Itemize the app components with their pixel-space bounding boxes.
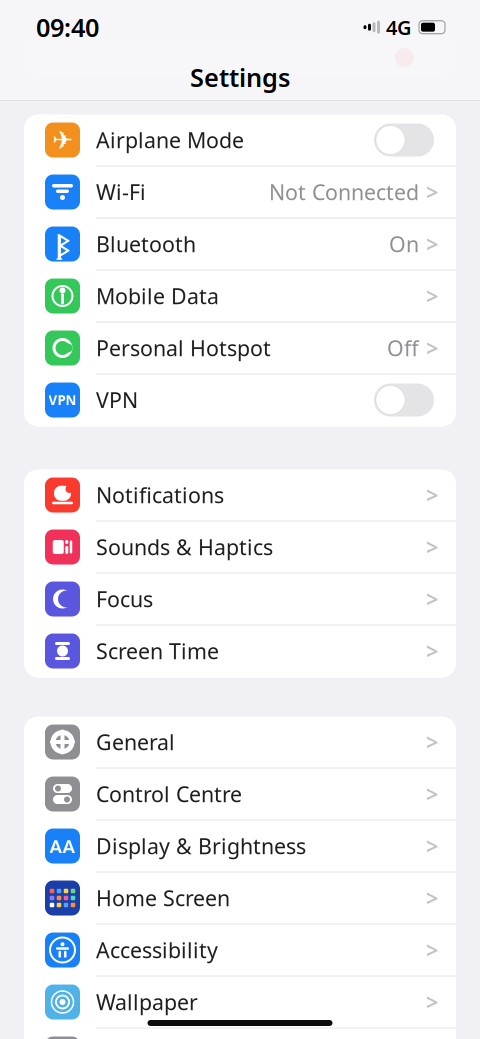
staticText: > bbox=[425, 935, 438, 965]
button[interactable]: ◎ bbox=[24, 1028, 456, 1039]
staticText: > bbox=[425, 333, 438, 363]
staticText: Control Centre bbox=[96, 780, 242, 808]
staticText: Accessibility bbox=[96, 936, 218, 964]
staticText: > bbox=[425, 281, 438, 311]
staticText: Screen Time bbox=[96, 637, 219, 665]
staticText: > bbox=[425, 532, 438, 562]
button[interactable]: Personal Hotspot bbox=[24, 322, 456, 374]
staticText: > bbox=[425, 779, 438, 809]
staticText: VPN bbox=[96, 386, 138, 414]
staticText: AA bbox=[49, 834, 75, 858]
button[interactable]: Sounds & Haptics bbox=[24, 521, 456, 573]
staticText: > bbox=[425, 229, 438, 259]
button[interactable]: Accessibility bbox=[24, 924, 456, 976]
staticText: On bbox=[389, 230, 419, 258]
staticText: Off bbox=[387, 334, 419, 362]
button[interactable]: Focus bbox=[24, 573, 456, 625]
staticText: 4G bbox=[386, 14, 412, 40]
staticText: ✈ bbox=[52, 126, 73, 154]
button[interactable]: VPN bbox=[24, 374, 456, 426]
staticText: Home Screen bbox=[96, 884, 230, 912]
staticText: > bbox=[425, 177, 438, 207]
staticText: Settings bbox=[190, 60, 290, 94]
staticText: Bluetooth bbox=[96, 230, 196, 258]
button[interactable]: ✈ bbox=[24, 114, 456, 166]
staticText: > bbox=[425, 636, 438, 666]
staticText: > bbox=[425, 831, 438, 861]
staticText: Display & Brightness bbox=[96, 832, 306, 860]
staticText: Mobile Data bbox=[96, 282, 219, 310]
staticText: Sounds & Haptics bbox=[96, 533, 273, 561]
button[interactable]: Mobile Data bbox=[24, 270, 456, 322]
staticText: Personal Hotspot bbox=[96, 334, 271, 362]
button[interactable]: ᛒ bbox=[24, 218, 456, 270]
staticText: Airplane Mode bbox=[96, 126, 244, 154]
button[interactable]: Screen Time bbox=[24, 625, 456, 677]
staticText: General bbox=[96, 728, 175, 756]
staticText: > bbox=[425, 480, 438, 510]
staticText: > bbox=[425, 883, 438, 913]
staticText: > bbox=[425, 584, 438, 614]
staticText: Notifications bbox=[96, 481, 224, 509]
button[interactable]: Control Centre bbox=[24, 768, 456, 820]
staticText: ᛒ bbox=[55, 226, 69, 262]
button[interactable]: General bbox=[24, 716, 456, 768]
staticText: VPN bbox=[48, 391, 76, 409]
button[interactable]: Notifications bbox=[24, 469, 456, 521]
staticText: Not Connected bbox=[269, 178, 419, 206]
staticText: > bbox=[425, 987, 438, 1017]
staticText: Wi-Fi bbox=[96, 178, 146, 206]
button[interactable]: Wallpaper bbox=[24, 976, 456, 1028]
button[interactable]: Home Screen bbox=[24, 872, 456, 924]
button[interactable]: Wi-Fi bbox=[24, 166, 456, 218]
staticText: > bbox=[425, 727, 438, 757]
staticText: Focus bbox=[96, 585, 153, 613]
button[interactable]: AA bbox=[24, 820, 456, 872]
staticText: 09:40 bbox=[36, 10, 99, 44]
staticText: Wallpaper bbox=[96, 988, 198, 1016]
